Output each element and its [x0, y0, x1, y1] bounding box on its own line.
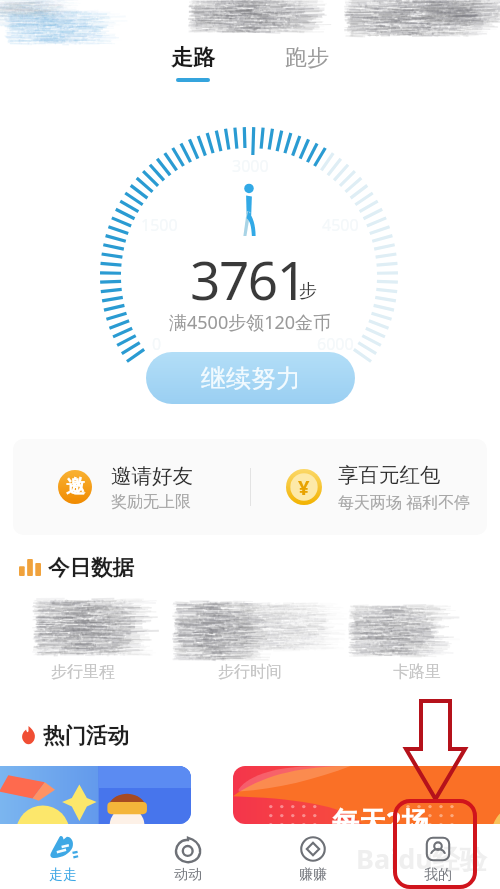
- staticText: 1500: [141, 214, 178, 236]
- button[interactable]: 走走: [0, 826, 125, 889]
- staticText: 走走: [49, 866, 77, 884]
- staticText: 热门活动: [43, 722, 129, 749]
- button[interactable]: 每天2场: [233, 766, 500, 824]
- button[interactable]: [0, 766, 191, 824]
- staticText: 步: [299, 280, 317, 303]
- staticText: 每天2场: [332, 802, 429, 824]
- staticText: ¥: [298, 474, 310, 501]
- staticText: 继续努力: [201, 363, 301, 394]
- staticText: 6000: [317, 333, 354, 355]
- staticText: 卡路里: [393, 662, 441, 682]
- staticText: 我的: [424, 866, 452, 884]
- staticText: 3000: [232, 155, 269, 177]
- staticText: 动动: [174, 866, 202, 884]
- button[interactable]: 我的: [375, 826, 500, 889]
- staticText: 今日数据: [48, 554, 134, 581]
- staticText: 跑步: [285, 44, 329, 72]
- staticText: 邀: [66, 475, 85, 499]
- button[interactable]: ¥: [251, 439, 487, 535]
- button[interactable]: 邀: [13, 439, 250, 535]
- button[interactable]: 跑步: [250, 44, 364, 72]
- staticText: 邀请好友: [111, 463, 193, 489]
- staticText: 满4500步领120金币: [169, 310, 332, 335]
- staticText: 每天两场 福利不停: [338, 491, 471, 513]
- staticText: 4500: [322, 214, 359, 236]
- staticText: 走路: [171, 44, 215, 72]
- button[interactable]: 走路: [136, 44, 250, 82]
- button[interactable]: 赚赚: [250, 826, 375, 889]
- staticText: Baidu经验: [356, 840, 487, 877]
- staticText: 3761: [190, 243, 306, 315]
- staticText: 步行里程: [51, 662, 115, 682]
- staticText: 步行时间: [218, 662, 282, 682]
- staticText: 赚赚: [299, 866, 327, 884]
- button[interactable]: 动动: [125, 826, 250, 889]
- staticText: 奖励无上限: [111, 492, 191, 512]
- staticText: 享百元红包: [338, 462, 441, 488]
- staticText: 0: [152, 333, 162, 355]
- button[interactable]: 继续努力: [146, 352, 355, 404]
